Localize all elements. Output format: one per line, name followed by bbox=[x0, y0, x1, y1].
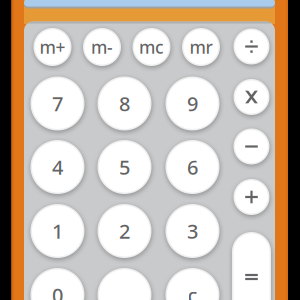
staticText: 3 bbox=[187, 218, 198, 244]
staticText: 0 bbox=[52, 282, 63, 300]
button[interactable]: . bbox=[97, 268, 151, 300]
staticText: m- bbox=[91, 35, 113, 58]
staticText: 4 bbox=[52, 154, 63, 180]
button[interactable]: 1 bbox=[30, 204, 84, 258]
staticText: m+ bbox=[39, 35, 65, 58]
button[interactable]: c bbox=[165, 268, 219, 300]
button[interactable]: 6 bbox=[165, 140, 219, 194]
button[interactable]: 8 bbox=[97, 76, 151, 130]
button[interactable]: Multiply bbox=[233, 79, 269, 115]
button[interactable]: mr bbox=[182, 28, 220, 66]
button[interactable]: Subtract bbox=[233, 128, 269, 164]
staticText: mr bbox=[189, 35, 212, 58]
staticText: mc bbox=[139, 35, 164, 58]
staticText: 6 bbox=[187, 154, 198, 180]
staticText: c bbox=[187, 282, 197, 300]
button[interactable]: mc bbox=[132, 28, 170, 66]
button[interactable]: Equals bbox=[232, 232, 271, 300]
staticText: 7 bbox=[52, 90, 63, 117]
button[interactable]: 7 bbox=[30, 76, 84, 130]
button[interactable]: 9 bbox=[165, 76, 219, 130]
staticText: 1 bbox=[52, 218, 63, 244]
button[interactable]: 2 bbox=[97, 204, 151, 258]
button[interactable]: m- bbox=[83, 28, 121, 66]
button[interactable]: 0 bbox=[30, 268, 84, 300]
button[interactable]: Add bbox=[233, 179, 269, 215]
staticText: 9 bbox=[187, 90, 198, 117]
button[interactable]: Divide bbox=[233, 28, 269, 64]
staticText: 8 bbox=[119, 90, 130, 117]
button[interactable]: 3 bbox=[165, 204, 219, 258]
button[interactable]: 4 bbox=[30, 140, 84, 194]
button[interactable]: m+ bbox=[33, 28, 71, 66]
button[interactable]: 5 bbox=[97, 140, 151, 194]
staticText: 5 bbox=[119, 154, 130, 180]
staticText: 2 bbox=[119, 218, 130, 244]
